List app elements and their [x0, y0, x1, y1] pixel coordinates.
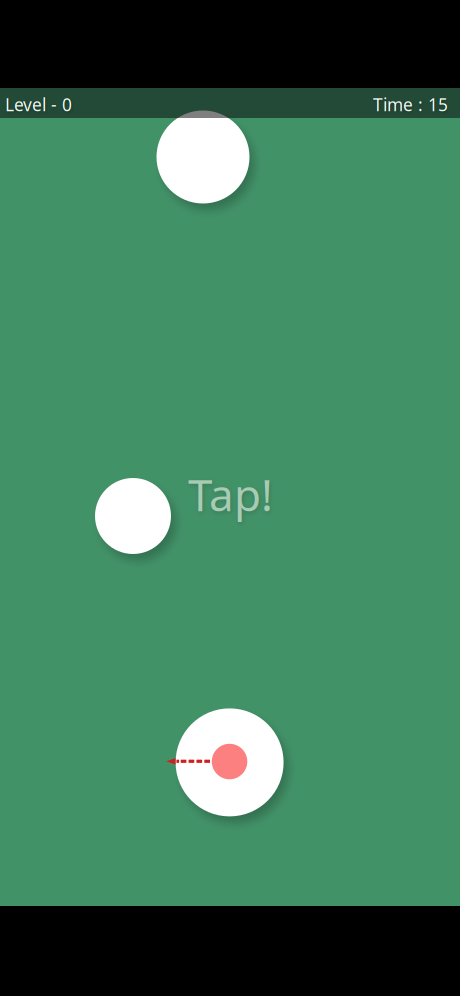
staticText: Tap! [188, 465, 273, 523]
button[interactable]: Tap target [95, 478, 171, 554]
staticText: Level - 0 [5, 93, 72, 116]
button[interactable]: Tap target [156, 110, 249, 203]
button[interactable]: Tap target [176, 708, 284, 816]
staticText: Time : 15 [373, 93, 448, 116]
